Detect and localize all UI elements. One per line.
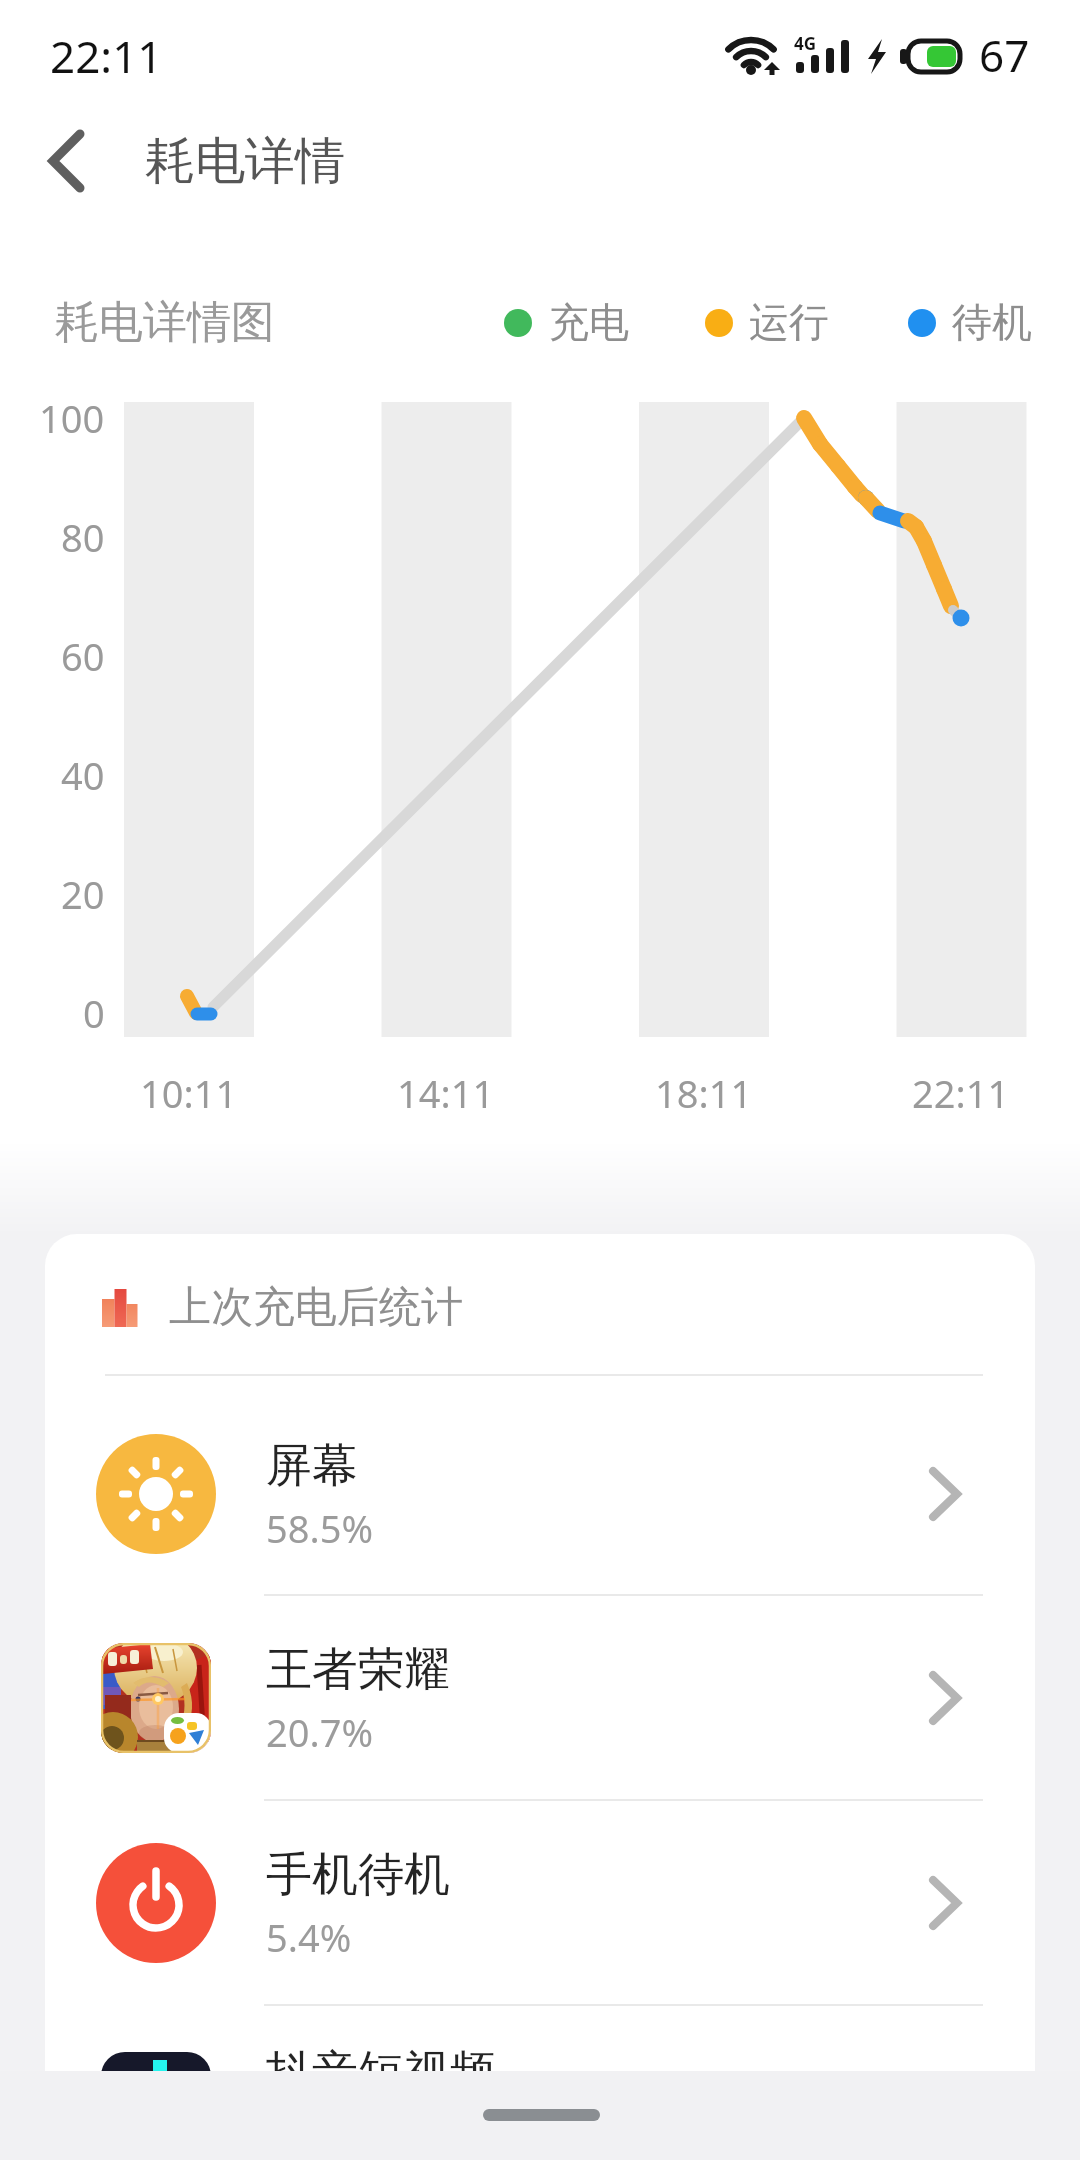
button[interactable] <box>45 1394 1035 1594</box>
staticText: 5.4% <box>266 1911 352 1963</box>
staticText: 22:11 <box>912 1067 1010 1119</box>
staticText: 22:11 <box>50 26 163 86</box>
staticText: 王者荣耀 <box>266 1641 450 1699</box>
staticText: 运行 <box>749 297 829 347</box>
staticText: 10:11 <box>140 1067 238 1119</box>
button[interactable] <box>30 130 110 192</box>
staticText: 100 <box>39 392 105 444</box>
staticText: 80 <box>61 511 105 563</box>
staticText: 67 <box>979 25 1030 85</box>
staticText: 20.7% <box>266 1706 373 1758</box>
staticText: 上次充电后统计 <box>169 1281 463 1334</box>
staticText: 18:11 <box>655 1067 753 1119</box>
staticText: 抖音短视频 <box>266 2044 496 2102</box>
button[interactable] <box>45 2006 1035 2160</box>
staticText: 4G <box>794 32 817 55</box>
staticText: 14:11 <box>397 1067 495 1119</box>
staticText: 耗电详情图 <box>55 295 275 350</box>
staticText: 58.5% <box>266 1502 373 1554</box>
staticText: 屏幕 <box>266 1437 358 1495</box>
staticText: 0 <box>83 987 105 1039</box>
button[interactable] <box>45 1801 1035 2004</box>
staticText: 耗电详情 <box>145 130 345 193</box>
staticText: 20 <box>61 868 105 920</box>
staticText: 60 <box>61 630 105 682</box>
staticText: 充电 <box>549 297 629 347</box>
staticText: 40 <box>61 749 105 801</box>
staticText: 手机待机 <box>266 1846 450 1904</box>
staticText: 待机 <box>952 297 1032 347</box>
button[interactable] <box>45 1596 1035 1799</box>
